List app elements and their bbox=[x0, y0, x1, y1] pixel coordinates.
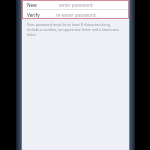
staticText: enter password bbox=[59, 2, 93, 8]
button[interactable]: New bbox=[22, 0, 129, 9]
staticText: Your password must be at least 8 charact… bbox=[27, 22, 123, 37]
staticText: New bbox=[27, 2, 37, 8]
staticText: re-enter password bbox=[56, 12, 96, 18]
button[interactable]: Verify bbox=[22, 10, 129, 19]
staticText: Verify bbox=[27, 12, 40, 18]
